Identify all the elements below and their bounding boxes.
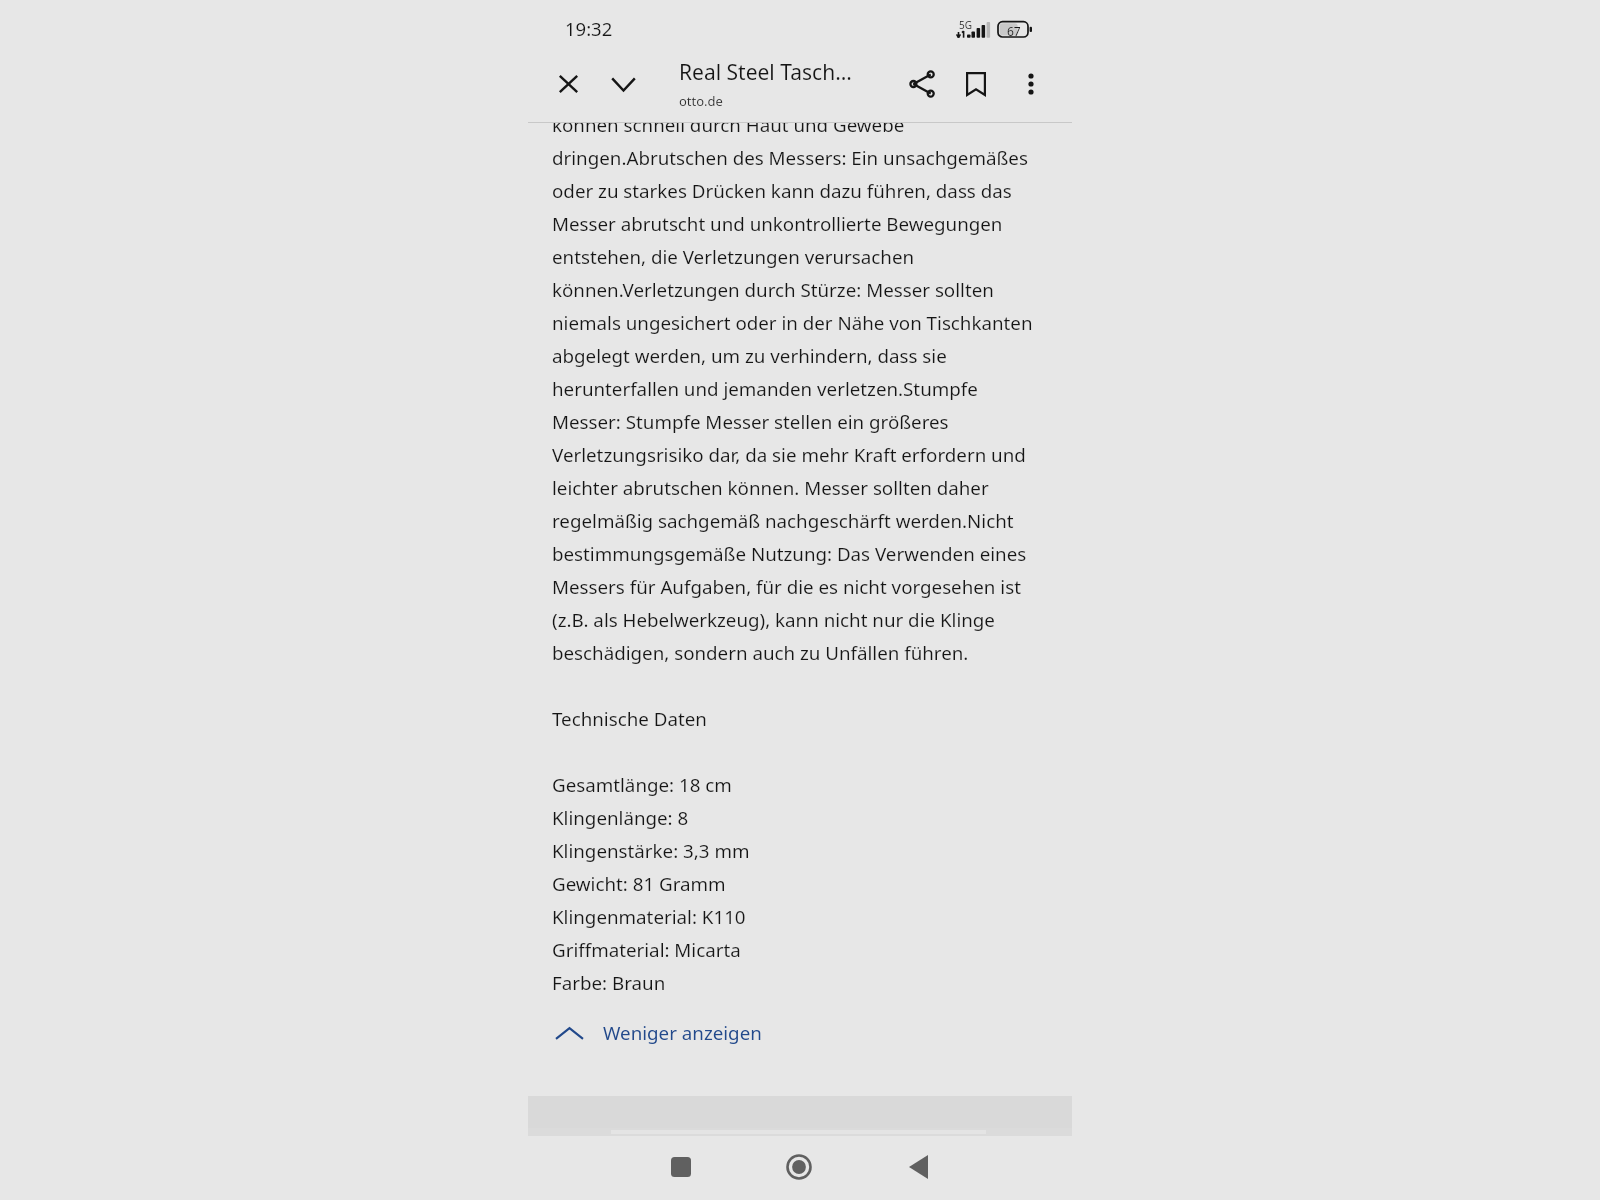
button[interactable]: Share bbox=[898, 60, 946, 108]
staticText: 5G bbox=[959, 18, 972, 32]
staticText: otto.de bbox=[679, 92, 723, 110]
button[interactable]: Real Steel Tasch… bbox=[672, 56, 888, 112]
staticText: können schnell durch Haut und Gewebe dri… bbox=[552, 123, 1033, 995]
staticText: Weniger anzeigen bbox=[603, 1020, 762, 1046]
button[interactable]: Recent apps bbox=[657, 1143, 705, 1191]
button[interactable]: Home bbox=[775, 1143, 823, 1191]
staticText: 67 bbox=[1007, 23, 1021, 39]
button[interactable]: Weniger anzeigen bbox=[555, 1016, 770, 1050]
button[interactable]: Bookmark bbox=[952, 60, 1000, 108]
button[interactable]: More options bbox=[1007, 60, 1055, 108]
button[interactable]: Expand bbox=[600, 60, 646, 108]
button[interactable]: Close bbox=[545, 60, 592, 108]
staticText: Real Steel Tasch… bbox=[679, 58, 859, 87]
staticText: 19:32 bbox=[565, 16, 613, 41]
button[interactable]: Back bbox=[894, 1143, 942, 1191]
